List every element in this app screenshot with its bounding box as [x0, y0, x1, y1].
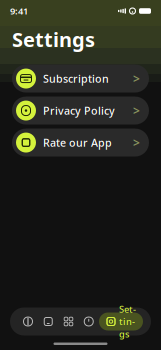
staticText: 9:41	[10, 5, 28, 17]
staticText: Subscription	[43, 71, 109, 86]
staticText: Settings	[12, 26, 95, 53]
staticText: Privacy Policy	[43, 103, 115, 118]
button[interactable]: Privacy Policy	[12, 97, 149, 125]
button[interactable]: Categories	[58, 311, 78, 331]
button[interactable]: Home	[38, 311, 58, 331]
button[interactable]: Edit	[18, 311, 38, 331]
staticText: >	[133, 103, 140, 118]
button[interactable]: History	[79, 311, 99, 331]
button[interactable]: Subscription	[12, 65, 149, 93]
button[interactable]: Settings	[99, 312, 143, 330]
staticText: Settings	[119, 303, 136, 340]
button[interactable]: Rate our App	[12, 129, 149, 157]
staticText: >	[133, 71, 140, 86]
staticText: Rate our App	[43, 135, 112, 150]
staticText: >	[133, 135, 140, 150]
